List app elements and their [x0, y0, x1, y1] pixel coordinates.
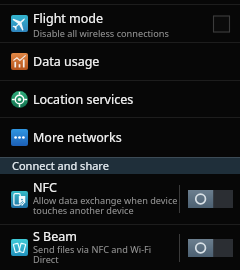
staticText: Send files via NFC and Wi-Fi Direct: [33, 243, 179, 266]
button[interactable]: NFC: [0, 174, 240, 224]
button[interactable]: Toggle: [188, 239, 233, 257]
button[interactable]: Location services: [0, 81, 240, 117]
button[interactable]: S Beam: [0, 225, 240, 270]
staticText: Allow data exchange when device touches …: [33, 194, 179, 217]
staticText: Connect and share: [12, 158, 109, 173]
staticText: Flight mode: [33, 10, 104, 27]
staticText: Disable all wireless connections: [33, 27, 179, 40]
staticText: S Beam: [33, 228, 77, 245]
button[interactable]: More networks: [0, 118, 240, 157]
staticText: NFC: [33, 179, 57, 196]
staticText: Data usage: [33, 53, 100, 70]
button[interactable]: Toggle: [188, 190, 233, 208]
button[interactable]: Flight mode: [0, 5, 240, 42]
staticText: Location services: [33, 91, 134, 108]
button[interactable]: Flight mode checkbox: [213, 15, 233, 33]
staticText: More networks: [33, 129, 122, 146]
button[interactable]: Data usage: [0, 43, 240, 80]
